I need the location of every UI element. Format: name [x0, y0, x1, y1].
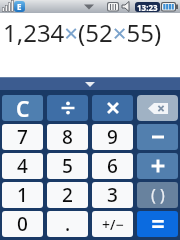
staticText: 4	[17, 153, 28, 179]
staticText: 5	[62, 153, 73, 179]
staticText: C	[16, 95, 30, 121]
button[interactable]: 6	[92, 153, 133, 179]
staticText: 1	[17, 182, 28, 208]
button[interactable]	[92, 95, 133, 121]
button[interactable]: 0	[2, 211, 43, 237]
staticText: E	[17, 1, 22, 12]
button[interactable]: 7	[2, 124, 43, 150]
staticText: 13:23	[137, 2, 158, 12]
button[interactable]	[137, 95, 178, 121]
staticText: 0	[17, 211, 28, 237]
staticText: 9	[107, 124, 118, 150]
button[interactable]: 4	[2, 153, 43, 179]
button[interactable]: 5	[47, 153, 88, 179]
button[interactable]	[137, 153, 178, 179]
button[interactable]: +/−	[92, 211, 133, 237]
staticText: 8	[62, 124, 73, 150]
button[interactable]: 9	[92, 124, 133, 150]
staticText: 3	[107, 182, 118, 208]
button[interactable]: 1	[2, 182, 43, 208]
button[interactable]	[137, 124, 178, 150]
staticText: 7	[17, 124, 28, 150]
button[interactable]	[47, 95, 88, 121]
button[interactable]: 2	[47, 182, 88, 208]
staticText: ( )	[151, 184, 165, 206]
staticText: .	[65, 211, 71, 237]
button[interactable]: 8	[47, 124, 88, 150]
button[interactable]: C	[2, 95, 43, 121]
button[interactable]	[137, 211, 178, 237]
button[interactable]: .	[47, 211, 88, 237]
staticText: 1,234×(52×55)	[3, 16, 162, 49]
button[interactable]: ( )	[137, 182, 178, 208]
staticText: 6	[107, 153, 118, 179]
staticText: +/−	[102, 215, 124, 234]
staticText: 2	[62, 182, 73, 208]
button[interactable]: 3	[92, 182, 133, 208]
